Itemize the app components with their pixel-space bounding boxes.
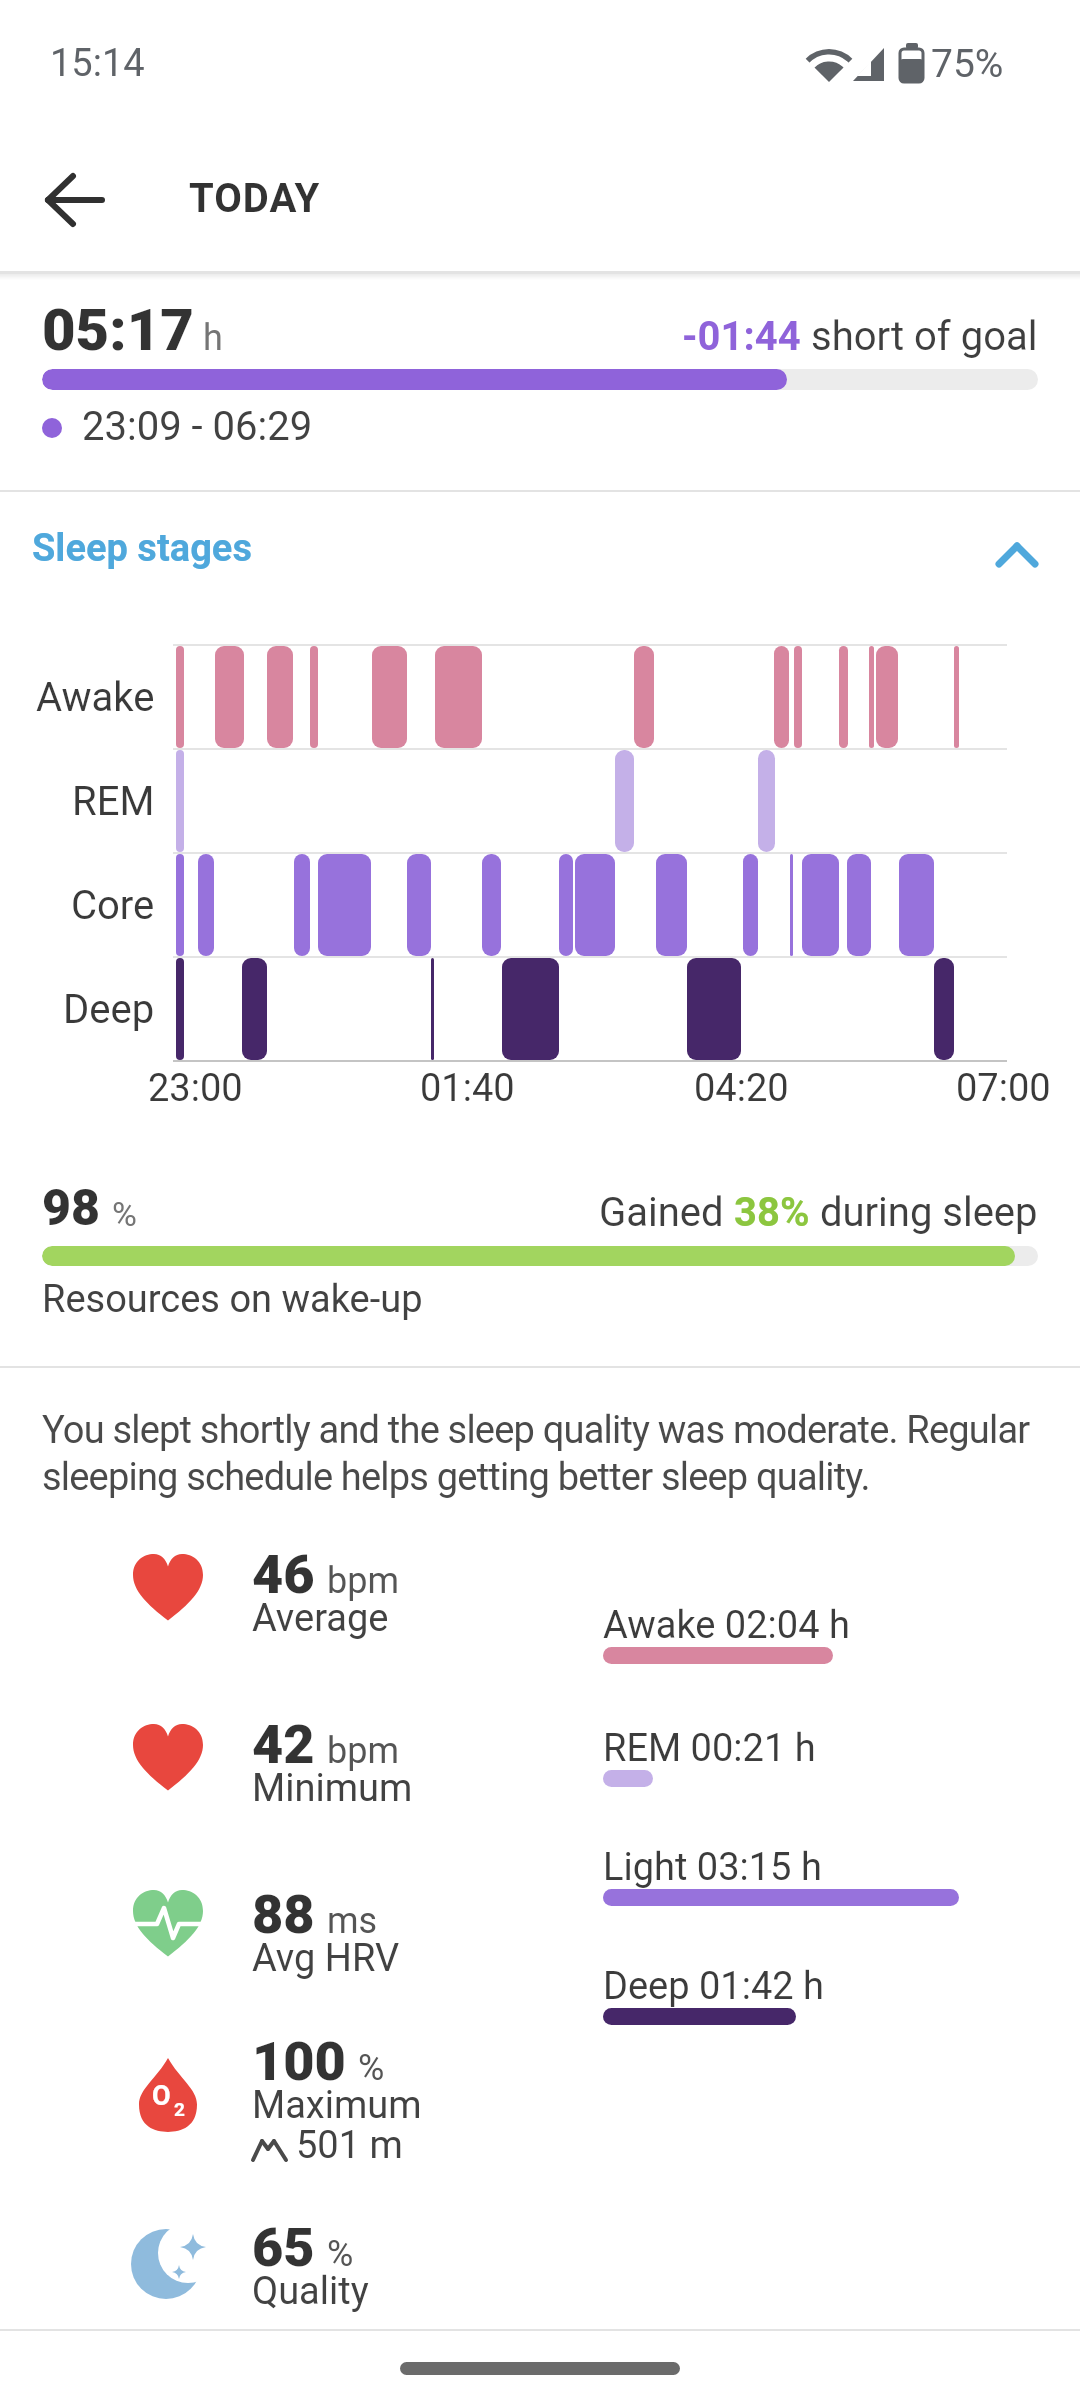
staticText: Avg HRV [252, 1936, 400, 1981]
staticText: REM [72, 778, 155, 825]
staticText: 05:17 [42, 296, 194, 364]
staticText: Awake [36, 674, 155, 721]
staticText: ms [327, 1900, 378, 1942]
staticText: Average [252, 1596, 389, 1641]
staticText: Maximum [252, 2083, 422, 2128]
staticText: 46 [252, 1543, 315, 1606]
staticText: Resources on wake-up [42, 1277, 423, 1322]
staticText: % [327, 2233, 354, 2275]
staticText: short of goal [811, 313, 1038, 360]
staticText: 88 [252, 1883, 315, 1946]
staticText: Quality [252, 2269, 369, 2314]
staticText: Sleep stages [32, 526, 252, 571]
staticText: % [358, 2047, 385, 2089]
staticText: You slept shortly and the sleep quality … [42, 1408, 1030, 1499]
staticText: bpm [327, 1560, 399, 1602]
staticText: Awake 02:04 h [603, 1603, 850, 1648]
staticText: Minimum [252, 1766, 413, 1811]
staticText: 04:20 [694, 1066, 789, 1111]
staticText: -01:44 [682, 313, 801, 360]
staticText: 23:00 [148, 1066, 243, 1111]
staticText: 38% [734, 1189, 810, 1236]
staticText: TODAY [189, 175, 321, 222]
staticText: 100 [252, 2030, 346, 2093]
staticText: Deep [63, 986, 155, 1033]
staticText: h [203, 317, 223, 359]
staticText: 2 [174, 2098, 185, 2120]
staticText: REM 00:21 h [603, 1726, 816, 1771]
staticText: 23:09 - 06:29 [82, 403, 313, 450]
staticText: 15:14 [50, 41, 145, 86]
staticText: Deep 01:42 h [603, 1964, 824, 2009]
staticText: 07:00 [956, 1066, 1051, 1111]
staticText: 65 [252, 2216, 315, 2279]
staticText: 75% [931, 41, 1004, 87]
staticText: 01:40 [420, 1066, 515, 1111]
button[interactable]: Sleep stages [0, 515, 1080, 575]
staticText: % [112, 1194, 137, 1234]
staticText: 501 m [296, 2123, 403, 2168]
staticText: 42 [252, 1713, 315, 1776]
staticText: during sleep [810, 1189, 1038, 1236]
staticText: 98 [42, 1179, 100, 1238]
staticText: Core [71, 882, 155, 929]
staticText: Gained [599, 1189, 734, 1236]
staticText: O [152, 2080, 171, 2112]
staticText: Light 03:15 h [603, 1845, 822, 1890]
staticText: bpm [327, 1730, 399, 1772]
button[interactable] [30, 170, 120, 230]
